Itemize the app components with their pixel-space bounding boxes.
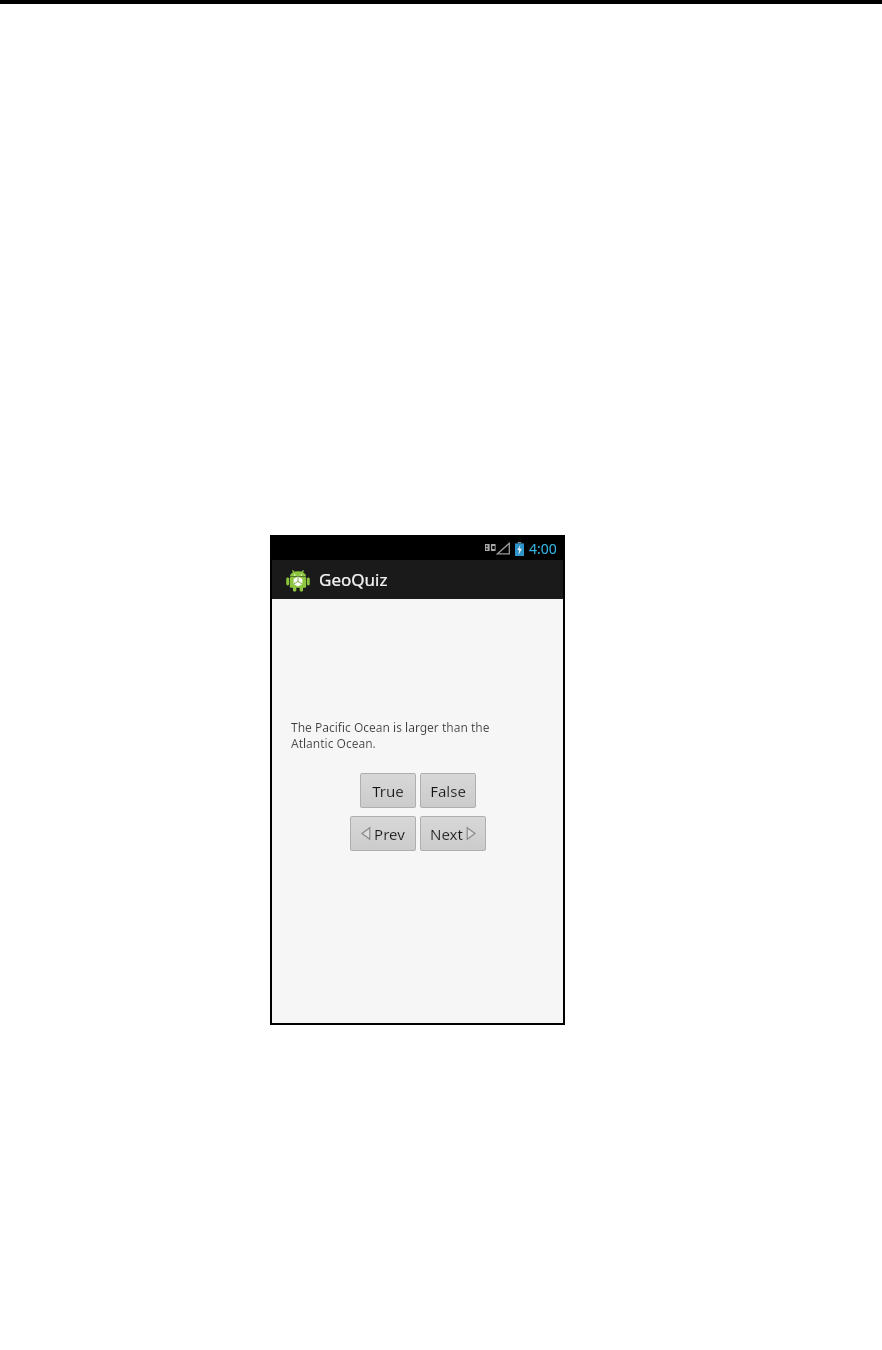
button[interactable]: False <box>420 773 476 808</box>
button[interactable]: Previous question <box>350 816 416 851</box>
staticText: 4:00 <box>529 539 557 558</box>
button[interactable]: True <box>360 773 416 808</box>
staticText: False <box>430 781 466 801</box>
staticText: True <box>372 781 404 801</box>
button[interactable]: App icon <box>272 560 563 599</box>
staticText: Next <box>430 824 463 844</box>
staticText: The Pacific Ocean is larger than the Atl… <box>291 719 531 751</box>
staticText: GeoQuiz <box>319 568 388 591</box>
other: App icon <box>286 568 310 592</box>
button[interactable]: Next question <box>420 816 486 851</box>
staticText: Prev <box>374 824 405 844</box>
